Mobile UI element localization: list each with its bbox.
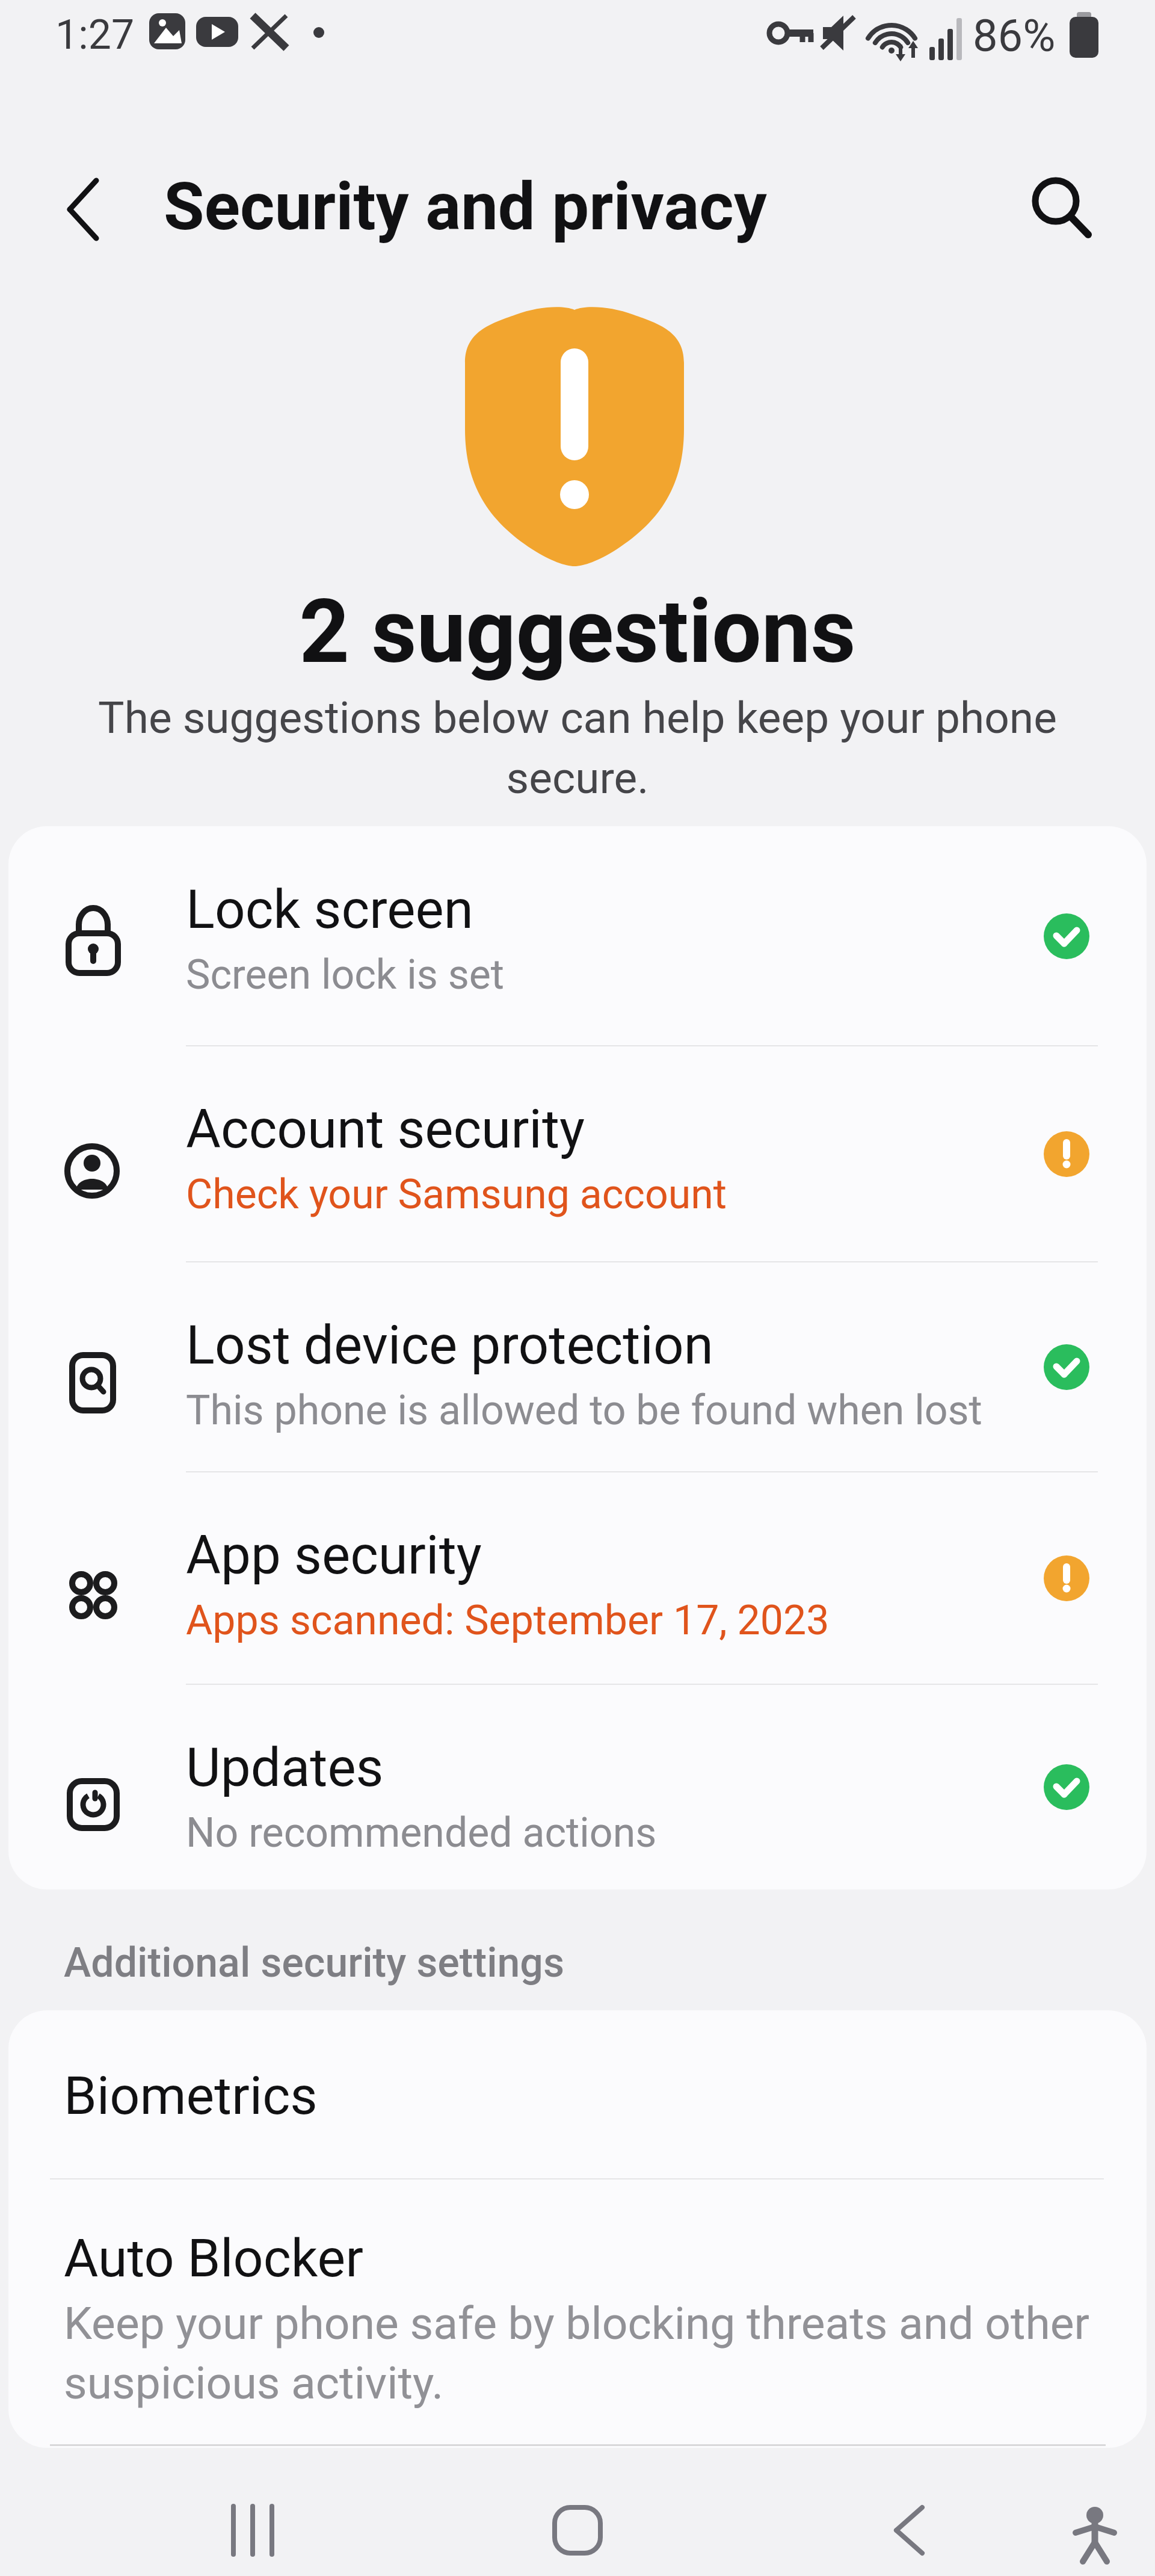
button[interactable]: Biometrics (8, 2010, 1147, 2178)
staticText: Auto Blocker (64, 2227, 364, 2289)
button[interactable]: Auto Blocker (8, 2179, 1147, 2448)
staticText: Additional security settings (64, 1939, 565, 1987)
staticText: 2 suggestions (0, 581, 1155, 684)
staticText: The suggestions below can help keep your… (0, 692, 1155, 804)
staticText: Biometrics (64, 2065, 318, 2127)
staticText: This phone is allowed to be found when l… (186, 1386, 982, 1435)
staticText: Updates (186, 1736, 384, 1799)
staticText: Account security (186, 1098, 585, 1160)
button[interactable]: Updates (8, 1684, 1147, 1889)
staticText: Keep your phone safe by blocking threats… (64, 2297, 1089, 2409)
staticText: Screen lock is set (186, 951, 505, 999)
staticText: No recommended actions (186, 1809, 657, 1857)
staticText: Security and privacy (164, 168, 768, 246)
staticText: App security (186, 1524, 482, 1586)
staticText: 1:27 (55, 11, 135, 59)
button[interactable] (523, 2476, 632, 2566)
button[interactable] (199, 2476, 307, 2566)
button[interactable]: Lost device protection (8, 1262, 1147, 1472)
staticText: Lock screen (186, 878, 473, 941)
staticText: 86% (973, 10, 1056, 62)
button[interactable]: Lock screen (8, 826, 1147, 1046)
button[interactable] (854, 2476, 962, 2566)
button[interactable] (1041, 2476, 1149, 2566)
button[interactable]: App security (8, 1472, 1147, 1684)
staticText: Apps scanned: September 17, 2023 (186, 1596, 830, 1645)
button[interactable] (1017, 164, 1103, 250)
button[interactable] (42, 168, 126, 253)
staticText: Lost device protection (186, 1314, 713, 1376)
staticText: Check your Samsung account (186, 1170, 727, 1219)
button[interactable]: Account security (8, 1046, 1147, 1262)
